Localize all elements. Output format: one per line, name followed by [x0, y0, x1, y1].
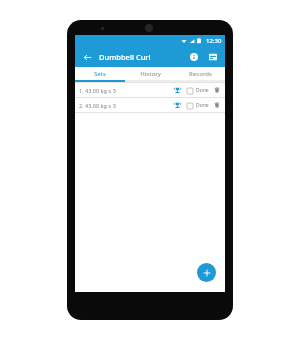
staticText: Sets: [94, 70, 106, 78]
staticText: 1. 43.00 kg x 3: [79, 87, 116, 94]
button[interactable]: Sets: [75, 67, 125, 80]
button[interactable]: Delete set: [212, 85, 222, 95]
button[interactable]: Calendar: [206, 50, 220, 64]
staticText: Done: [196, 102, 209, 109]
button[interactable]: Personal record: [172, 85, 182, 95]
button[interactable]: Info: [187, 50, 201, 64]
staticText: Records: [189, 70, 212, 78]
button[interactable]: Back: [80, 50, 94, 64]
button[interactable]: 2. 43.00 kg x 3: [75, 98, 225, 112]
button[interactable]: Done checkbox: [185, 101, 194, 110]
staticText: 12:30: [206, 37, 222, 45]
button[interactable]: Personal record: [172, 100, 182, 110]
staticText: Dumbbell Curl: [99, 52, 151, 62]
button[interactable]: 1. 43.00 kg x 3: [75, 83, 225, 97]
button[interactable]: Records: [175, 67, 225, 80]
staticText: Done: [196, 87, 209, 94]
button[interactable]: Add set: [197, 263, 216, 282]
button[interactable]: Done checkbox: [185, 86, 194, 95]
button[interactable]: History: [125, 67, 175, 80]
button[interactable]: Delete set: [212, 100, 222, 110]
staticText: 2. 43.00 kg x 3: [79, 102, 116, 109]
staticText: History: [140, 70, 161, 78]
